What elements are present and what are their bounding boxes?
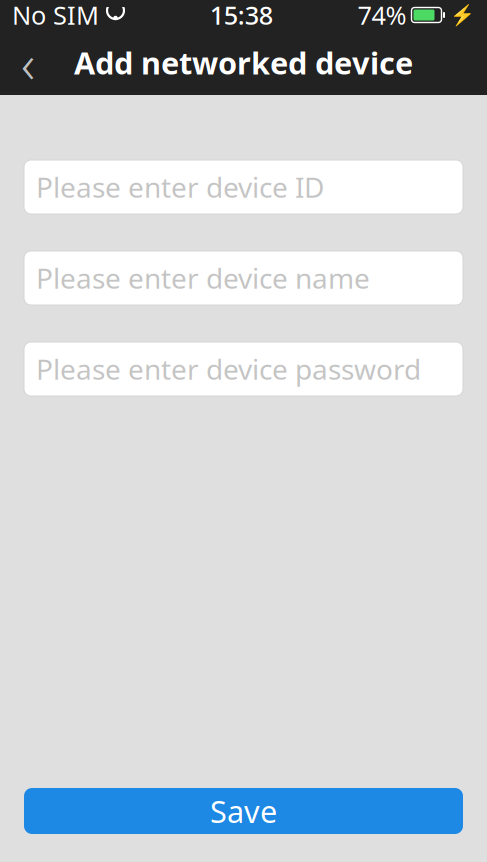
staticText: 74%: [357, 0, 406, 32]
button[interactable]: Save: [24, 788, 463, 834]
staticText: No SIM: [12, 0, 99, 32]
staticText: ‹: [21, 27, 35, 98]
staticText: Save: [210, 791, 277, 831]
button[interactable]: Back: [0, 30, 56, 95]
button[interactable]: Please enter device ID: [24, 160, 463, 214]
button[interactable]: Please enter device password: [24, 342, 463, 396]
staticText: Please enter device password: [36, 350, 421, 388]
staticText: Add networked device: [74, 42, 413, 83]
staticText: ⚡: [450, 4, 475, 26]
staticText: Please enter device ID: [36, 168, 324, 206]
staticText: Please enter device name: [36, 259, 370, 297]
button[interactable]: Please enter device name: [24, 251, 463, 305]
staticText: 15:38: [210, 0, 273, 32]
